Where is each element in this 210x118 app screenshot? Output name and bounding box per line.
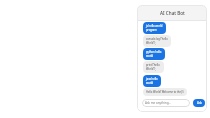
staticText: Ask [197, 101, 202, 105]
button[interactable]: js hello world program [143, 22, 166, 34]
button[interactable]: console.log("hello World"); [143, 35, 171, 47]
staticText: Hello World! Welcome to the JS [146, 90, 184, 94]
button[interactable]: Ask me anything... [142, 99, 190, 107]
staticText: Ask me anything... [145, 101, 171, 105]
button[interactable]: Hello World! Welcome to the JS [143, 88, 187, 96]
button[interactable]: Ask [193, 99, 205, 107]
staticText: python hello world [146, 50, 162, 58]
staticText: AI Chat Bot [160, 10, 185, 16]
staticText: print("hello World"); [146, 63, 161, 71]
button[interactable]: print("hello World"); [143, 61, 164, 73]
staticText: js hello world program [146, 24, 163, 32]
button[interactable]: python hello world [143, 48, 165, 60]
staticText: java hello world [146, 77, 158, 85]
button[interactable]: java hello world [143, 75, 161, 87]
staticText: console.log("hello World"); [146, 37, 168, 45]
